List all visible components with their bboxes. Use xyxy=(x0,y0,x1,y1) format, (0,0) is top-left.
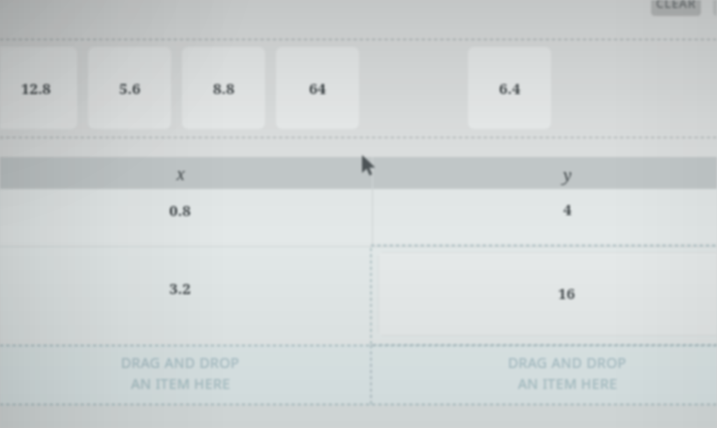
staticText: DRAG AND DROP xyxy=(121,353,240,372)
button[interactable]: 64 xyxy=(276,47,359,129)
staticText: 64 xyxy=(309,78,326,98)
button[interactable]: 5.6 xyxy=(88,47,171,129)
staticText: AN ITEM HERE xyxy=(518,374,618,393)
button[interactable]: 12.8 xyxy=(0,47,77,129)
staticText: 5.6 xyxy=(119,78,141,98)
button[interactable]: DRAG AND DROP xyxy=(0,343,371,403)
button[interactable]: DRAG AND DROP xyxy=(371,343,717,403)
staticText: CLEAR xyxy=(656,0,697,11)
staticText: x xyxy=(176,163,185,185)
staticText: 12.8 xyxy=(21,78,51,98)
staticText: 16 xyxy=(558,283,575,303)
staticText: 8.8 xyxy=(213,78,235,98)
button[interactable]: 8.8 xyxy=(182,47,265,129)
button[interactable]: 6.4 xyxy=(468,47,551,129)
button[interactable]: More xyxy=(713,0,717,16)
staticText: 4 xyxy=(563,199,572,219)
staticText: 6.4 xyxy=(499,78,521,98)
staticText: 3.2 xyxy=(169,278,191,298)
staticText: y xyxy=(563,164,572,186)
staticText: DRAG AND DROP xyxy=(508,353,627,372)
staticText: 0.8 xyxy=(169,200,191,220)
staticText: AN ITEM HERE xyxy=(131,374,231,393)
button[interactable] xyxy=(378,252,717,336)
button[interactable]: CLEAR xyxy=(651,0,701,16)
